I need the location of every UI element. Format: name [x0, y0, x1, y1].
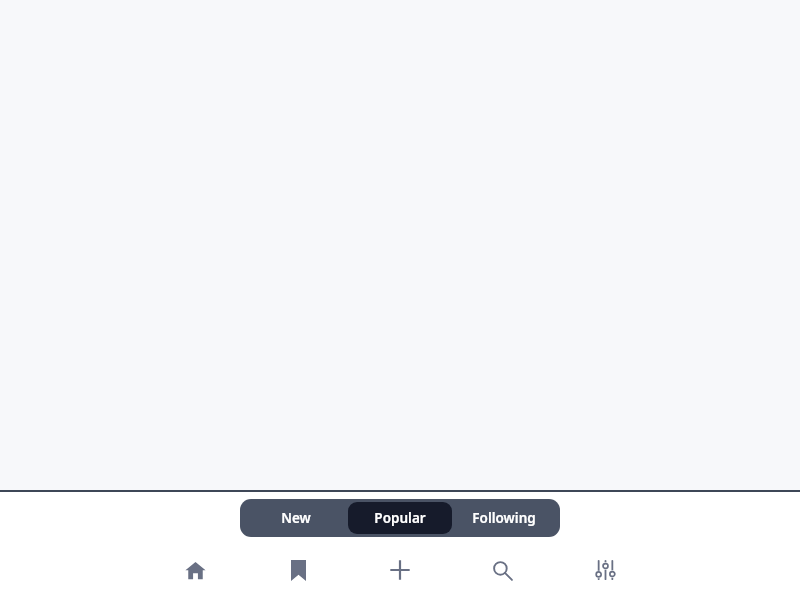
button[interactable]: Popular	[348, 502, 452, 534]
button[interactable]: Home	[171, 546, 219, 594]
staticText: Popular	[374, 509, 426, 527]
staticText: New	[281, 509, 311, 527]
button[interactable]: Create new	[376, 546, 424, 594]
button[interactable]: Following	[452, 502, 556, 534]
staticText: Following	[472, 509, 536, 527]
button[interactable]: New	[244, 502, 348, 534]
button[interactable]: Search	[478, 546, 526, 594]
button[interactable]: Bookmarks	[274, 546, 322, 594]
button[interactable]: Filters	[581, 546, 629, 594]
